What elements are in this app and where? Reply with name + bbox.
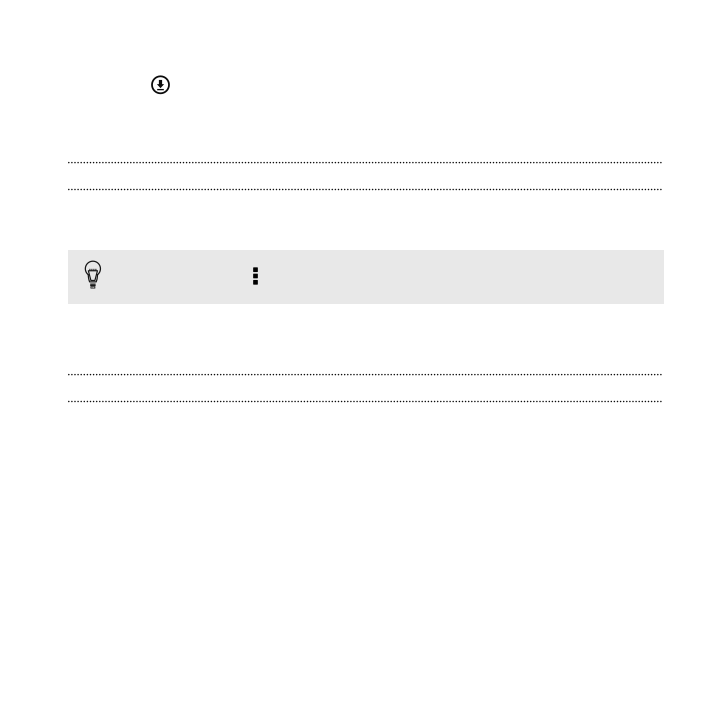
button[interactable]: More options [253, 267, 258, 285]
button[interactable]: Download [152, 76, 169, 93]
